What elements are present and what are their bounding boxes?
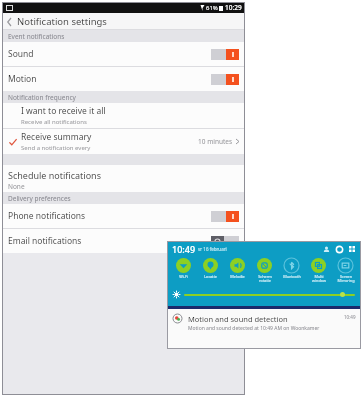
button[interactable] — [211, 236, 239, 247]
button[interactable] — [211, 74, 239, 85]
staticText: Motion and sound detected at 10:49 AM on… — [188, 325, 320, 332]
button[interactable]: I want to receive it all — [2, 103, 245, 128]
staticText: Receive summary — [21, 131, 92, 143]
staticText: Multi window — [312, 274, 326, 284]
staticText: 10:49 — [172, 243, 196, 255]
button[interactable] — [211, 49, 239, 60]
staticText: Locatie — [204, 274, 217, 279]
staticText: Schedule notifications — [8, 169, 101, 181]
staticText: Melodie — [230, 274, 245, 279]
button[interactable]: Wi-Fi — [169, 257, 197, 287]
button[interactable]: Brightness — [173, 287, 355, 301]
staticText: Delivery preferences — [8, 194, 71, 203]
button[interactable]: Scherm rotatie — [251, 257, 278, 287]
staticText: 10:29 — [225, 3, 242, 12]
staticText: Notification settings — [17, 15, 107, 28]
button[interactable]: Screen Mirroring — [332, 257, 359, 287]
staticText: 61% — [206, 4, 218, 12]
staticText: Email notifications — [8, 235, 211, 247]
staticText: Motion — [8, 73, 211, 85]
button[interactable]: Edit quick settings — [348, 245, 356, 253]
button[interactable]: Email notifications — [2, 229, 245, 253]
button[interactable]: Settings — [335, 245, 343, 253]
button[interactable]: Bluetooth — [278, 257, 305, 287]
button[interactable]: Locatie — [197, 257, 224, 287]
button[interactable]: Sound — [2, 42, 245, 66]
button[interactable]: Melodie — [224, 257, 251, 287]
staticText: Send a notification every — [21, 144, 91, 152]
button[interactable]: Schedule notifications — [2, 165, 245, 192]
staticText: Bluetooth — [283, 274, 301, 279]
staticText: Wi-Fi — [179, 274, 188, 279]
staticText: vr 16 februari — [198, 246, 227, 252]
button[interactable] — [211, 211, 239, 222]
button[interactable]: Phone notifications — [2, 204, 245, 228]
staticText: Receive all notifications — [21, 118, 87, 126]
button[interactable]: User — [322, 245, 330, 253]
staticText: Motion and sound detection — [188, 314, 288, 324]
button[interactable]: Motion — [2, 67, 245, 91]
staticText: Scherm rotatie — [258, 274, 272, 284]
button[interactable]: Multi window — [305, 257, 332, 287]
staticText: Sound — [8, 48, 211, 60]
button[interactable]: Motion and sound detection — [167, 309, 361, 332]
button[interactable]: Receive summary — [2, 129, 245, 154]
staticText: Event notifications — [8, 32, 65, 41]
staticText: I want to receive it all — [21, 105, 106, 117]
staticText: Screen Mirroring — [337, 274, 355, 284]
button[interactable]: Back — [7, 18, 12, 26]
staticText: None — [8, 182, 25, 191]
staticText: 10:49 — [344, 314, 356, 320]
staticText: Notification frequency — [8, 93, 76, 102]
staticText: Phone notifications — [8, 210, 211, 222]
staticText: 10 minutes — [198, 137, 233, 146]
